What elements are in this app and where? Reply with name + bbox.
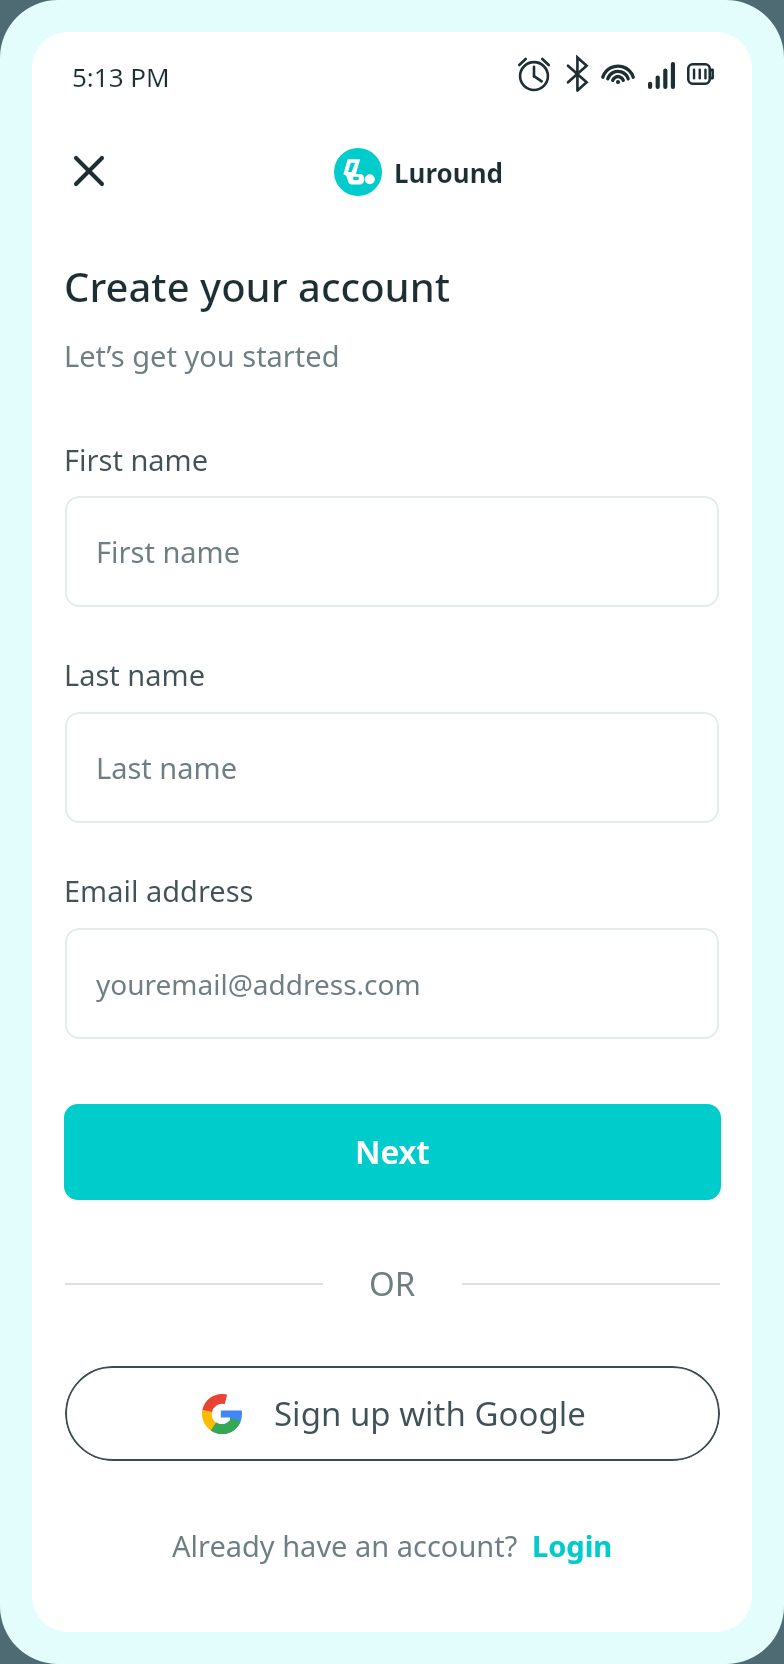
staticText: Let’s get you started: [64, 336, 340, 375]
staticText: youremail@address.com: [96, 965, 421, 1003]
staticText: Login: [532, 1526, 613, 1565]
staticText: 5:13 PM: [72, 59, 170, 94]
staticText: Sign up with Google: [274, 1391, 586, 1436]
staticText: Last name: [64, 655, 206, 694]
button[interactable]: Last name: [65, 712, 719, 823]
staticText: Already have an account?: [172, 1526, 518, 1565]
button[interactable]: Sign up with Google: [65, 1366, 720, 1461]
button[interactable]: First name: [65, 496, 719, 607]
staticText: OR: [369, 1261, 416, 1306]
button[interactable]: Close: [65, 147, 113, 195]
button[interactable]: youremail@address.com: [65, 928, 719, 1039]
staticText: Next: [355, 1130, 430, 1174]
staticText: First name: [64, 440, 209, 479]
staticText: Luround: [394, 155, 504, 190]
button[interactable]: Next: [64, 1104, 721, 1200]
staticText: First name: [96, 532, 241, 571]
staticText: Last name: [96, 748, 238, 787]
button[interactable]: Login: [532, 1526, 613, 1565]
staticText: Create your account: [64, 259, 451, 313]
staticText: Email address: [64, 871, 254, 910]
